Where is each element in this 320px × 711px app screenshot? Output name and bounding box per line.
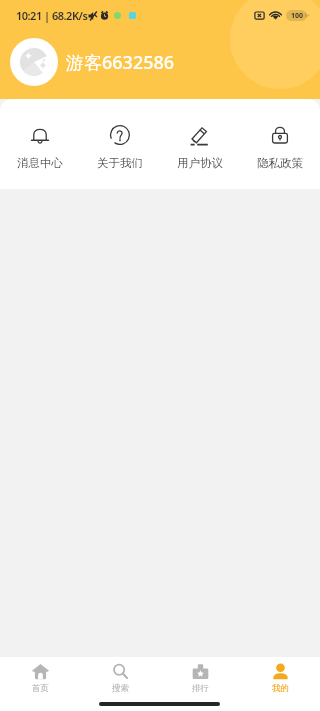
staticText: 消息中心 (17, 156, 63, 170)
button[interactable]: 关于我们 (80, 99, 160, 170)
staticText: 隐私政策 (257, 156, 303, 170)
staticText: 关于我们 (97, 156, 143, 170)
staticText: 100 (291, 11, 304, 21)
staticText: 排行 (192, 683, 209, 694)
staticText: 10:21 | 68.2K/s (16, 8, 88, 23)
staticText: 搜索 (112, 683, 129, 694)
staticText: 游客6632586 (66, 50, 175, 75)
button[interactable]: 消息中心 (0, 99, 80, 170)
staticText: 用户协议 (177, 156, 223, 170)
button[interactable]: 用户协议 (160, 99, 240, 170)
staticText: 首页 (32, 683, 49, 694)
button[interactable]: 我的 (240, 657, 320, 694)
button[interactable]: 隐私政策 (240, 99, 320, 170)
button[interactable]: 首页 (0, 657, 80, 694)
staticText: 我的 (272, 683, 289, 694)
button[interactable]: 排行 (160, 657, 240, 694)
button[interactable]: 搜索 (80, 657, 160, 694)
